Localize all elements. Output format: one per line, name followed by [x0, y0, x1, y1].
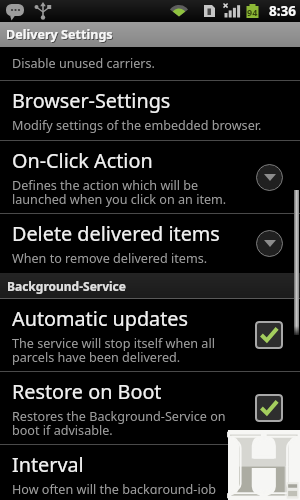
- staticText: Automatic updates: [12, 305, 189, 332]
- staticText: Interval: [12, 451, 84, 478]
- staticText: 8:36: [269, 2, 296, 20]
- button[interactable]: Open options: [256, 164, 283, 191]
- button[interactable]: Restore on Boot: [0, 372, 300, 444]
- staticText: Background-Service: [7, 278, 126, 294]
- button[interactable]: Browser-Settings: [0, 81, 300, 140]
- staticText: 94: [247, 6, 258, 18]
- staticText: Delete delivered items: [12, 220, 220, 247]
- staticText: Delivery Settings: [7, 27, 114, 44]
- button[interactable]: Disable unused carriers.: [0, 47, 300, 80]
- button[interactable]: Interval: [0, 445, 300, 500]
- button[interactable]: Open options: [256, 230, 283, 257]
- staticText: Restore on Boot: [12, 378, 162, 405]
- staticText: When to remove delivered items.: [12, 250, 208, 267]
- staticText: On-Click Action: [12, 147, 153, 174]
- staticText: Disable unused carriers.: [12, 55, 155, 72]
- staticText: Browser-Settings: [12, 87, 171, 114]
- staticText: Delivery Settings: [6, 26, 113, 43]
- staticText: Modify settings of the embedded browser.: [12, 117, 262, 134]
- button[interactable]: Automatic updates: [0, 299, 300, 371]
- button[interactable]: Toggle setting: [255, 321, 283, 349]
- staticText: How often will the background-job: [12, 481, 217, 494]
- button[interactable]: Delete delivered items: [0, 214, 300, 273]
- staticText: Defines the action which will be launche…: [12, 177, 227, 207]
- staticText: The service will stop itself when all pa…: [12, 335, 215, 365]
- button[interactable]: Toggle setting: [255, 394, 283, 422]
- staticText: Restores the Background-Service on boot …: [12, 408, 226, 438]
- button[interactable]: On-Click Action: [0, 141, 300, 213]
